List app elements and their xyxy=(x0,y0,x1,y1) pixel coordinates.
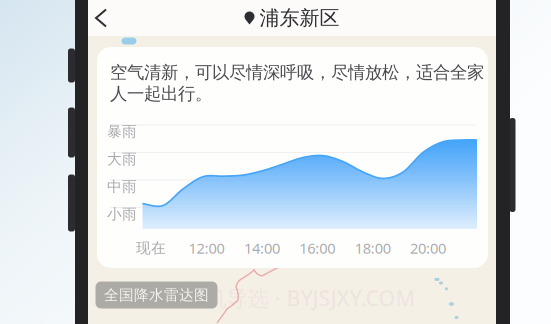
button[interactable]: Back xyxy=(88,0,120,36)
staticText: 现在 xyxy=(136,239,166,257)
staticText: 暴雨 xyxy=(107,122,137,140)
staticText: 14:00 xyxy=(244,238,280,258)
staticText: 必用手机导选 · BYJSJXY.COM xyxy=(142,284,415,312)
button[interactable]: 全国降水雷达图 xyxy=(95,281,217,308)
staticText: 全国降水雷达图 xyxy=(104,286,209,304)
staticText: 大雨 xyxy=(107,150,137,168)
staticText: 16:00 xyxy=(299,238,335,258)
staticText: 小雨 xyxy=(107,205,137,223)
staticText: 空气清新，可以尽情深呼吸，尽情放松，适合全家人一起出行。 xyxy=(110,62,484,104)
staticText: 12:00 xyxy=(188,238,224,258)
staticText: 中雨 xyxy=(107,177,137,195)
staticText: 18:00 xyxy=(355,238,391,258)
staticText: 浦东新区 xyxy=(259,6,339,30)
staticText: 20:00 xyxy=(410,238,446,258)
